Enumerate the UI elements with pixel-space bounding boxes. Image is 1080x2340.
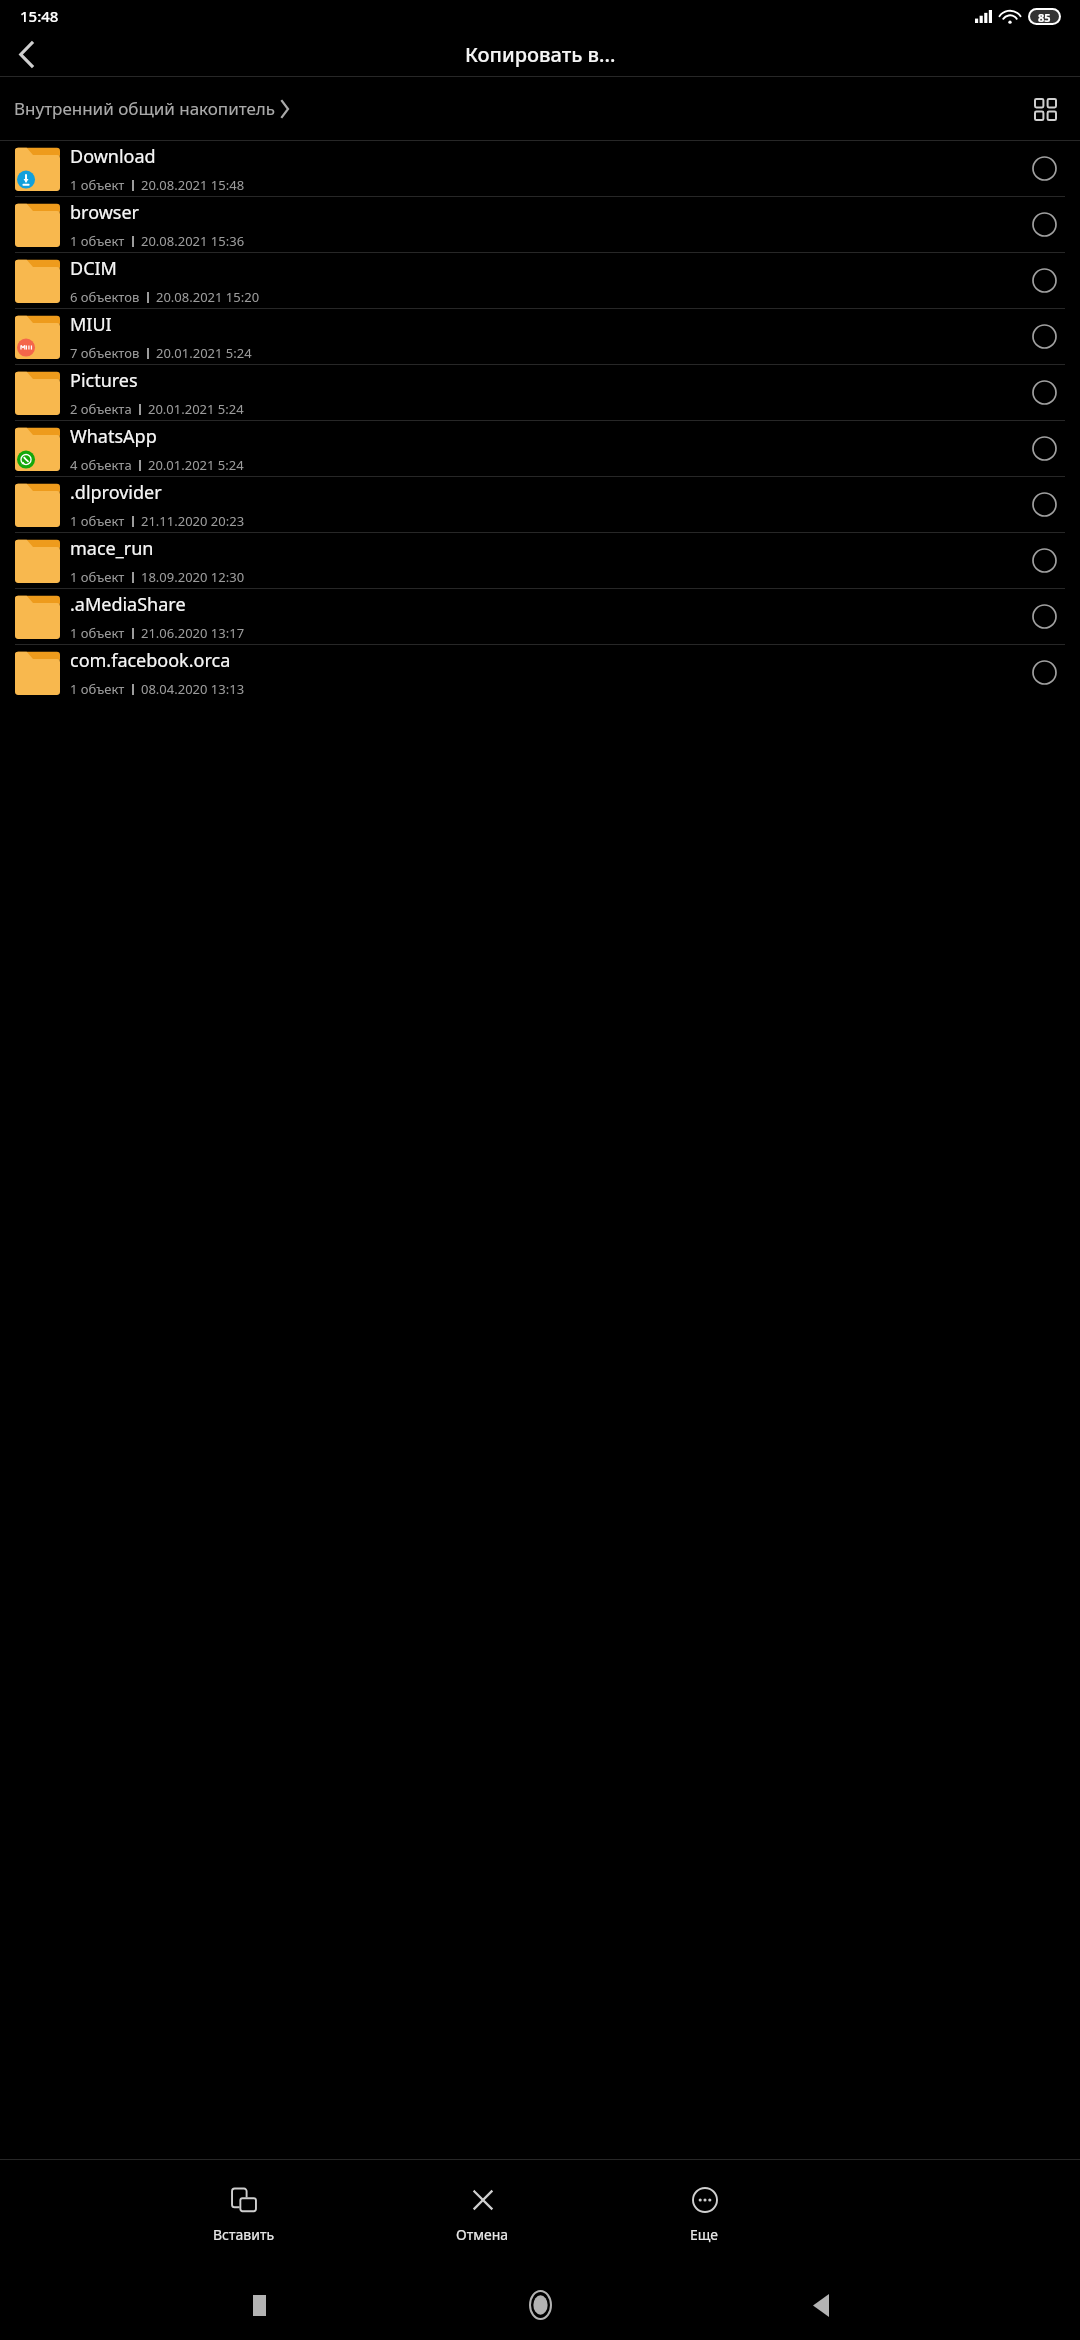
staticText: Вставить: [213, 2225, 275, 2244]
button[interactable]: Выбрать mace_run: [1017, 533, 1072, 588]
button[interactable]: com.facebook.orca: [0, 645, 1080, 700]
button[interactable]: WhatsApp: [0, 421, 1080, 476]
staticText: 08.04.2020 13:13: [141, 680, 245, 698]
staticText: 20.08.2021 15:36: [141, 232, 245, 250]
button[interactable]: DCIM: [0, 253, 1080, 308]
button[interactable]: Еще: [684, 2183, 725, 2248]
staticText: Внутренний общий накопитель: [14, 97, 276, 120]
button[interactable]: Выбрать Pictures: [1017, 365, 1072, 420]
staticText: WhatsApp: [70, 424, 157, 449]
button[interactable]: .dlprovider: [0, 477, 1080, 532]
button[interactable]: Вид сетки: [1021, 85, 1069, 133]
staticText: 7 объектов: [70, 344, 140, 362]
button[interactable]: Вставить: [207, 2183, 281, 2248]
staticText: .dlprovider: [70, 480, 162, 505]
button[interactable]: browser: [0, 197, 1080, 252]
button[interactable]: Внутренний общий накопитель: [14, 97, 289, 120]
button[interactable]: Недавние: [237, 2283, 281, 2327]
staticText: 20.08.2021 15:48: [141, 176, 245, 194]
button[interactable]: Выбрать com.facebook.orca: [1017, 645, 1072, 700]
staticText: 6 объектов: [70, 288, 140, 306]
button[interactable]: Выбрать browser: [1017, 197, 1072, 252]
staticText: Копировать в...: [465, 41, 616, 68]
staticText: 1 объект: [70, 624, 125, 642]
staticText: 20.01.2021 5:24: [156, 344, 252, 362]
staticText: 2 объекта: [70, 400, 132, 418]
staticText: Download: [70, 144, 156, 169]
button[interactable]: .aMediaShare: [0, 589, 1080, 644]
staticText: Еще: [690, 2225, 719, 2244]
staticText: Отмена: [456, 2225, 509, 2244]
staticText: 15:48: [20, 6, 59, 26]
staticText: 1 объект: [70, 680, 125, 698]
button[interactable]: Назад: [0, 32, 52, 76]
button[interactable]: Выбрать MIUI: [1017, 309, 1072, 364]
staticText: .aMediaShare: [70, 592, 186, 617]
button[interactable]: Выбрать Download: [1017, 141, 1072, 196]
staticText: 1 объект: [70, 232, 125, 250]
staticText: browser: [70, 200, 140, 225]
staticText: 18.09.2020 12:30: [141, 568, 245, 586]
staticText: 21.11.2020 20:23: [141, 512, 245, 530]
button[interactable]: MIUI: [0, 309, 1080, 364]
button[interactable]: Выбрать WhatsApp: [1017, 421, 1072, 476]
staticText: com.facebook.orca: [70, 648, 231, 673]
staticText: 85: [1038, 10, 1051, 23]
staticText: 21.06.2020 13:17: [141, 624, 245, 642]
staticText: Pictures: [70, 368, 138, 393]
button[interactable]: mace_run: [0, 533, 1080, 588]
button[interactable]: Отмена: [450, 2183, 515, 2248]
staticText: DCIM: [70, 256, 117, 281]
staticText: 4 объекта: [70, 456, 132, 474]
staticText: 1 объект: [70, 176, 125, 194]
staticText: 1 объект: [70, 512, 125, 530]
staticText: 20.01.2021 5:24: [148, 456, 244, 474]
staticText: 20.08.2021 15:20: [156, 288, 260, 306]
button[interactable]: Назад: [799, 2283, 843, 2327]
button[interactable]: Выбрать .dlprovider: [1017, 477, 1072, 532]
staticText: MIUI: [70, 312, 112, 337]
staticText: 1 объект: [70, 568, 125, 586]
button[interactable]: Выбрать .aMediaShare: [1017, 589, 1072, 644]
button[interactable]: Pictures: [0, 365, 1080, 420]
button[interactable]: Download: [0, 141, 1080, 196]
staticText: mace_run: [70, 536, 154, 561]
button[interactable]: Выбрать DCIM: [1017, 253, 1072, 308]
staticText: 20.01.2021 5:24: [148, 400, 244, 418]
button[interactable]: Домой: [518, 2283, 562, 2327]
